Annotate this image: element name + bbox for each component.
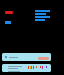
button[interactable] <box>2 53 51 61</box>
button[interactable] <box>2 64 51 72</box>
button[interactable] <box>38 57 49 60</box>
button[interactable]: Action <box>5 21 11 24</box>
button[interactable]: Logo <box>5 11 13 14</box>
